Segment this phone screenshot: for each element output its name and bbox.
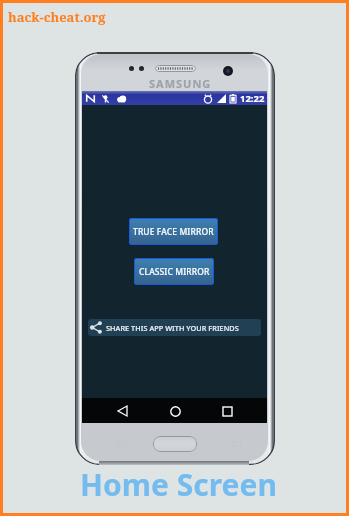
button[interactable]: TRUE FACE MIRROR: [129, 218, 218, 245]
staticText: SHARE THIS APP WITH YOUR FRIENDS: [106, 323, 239, 333]
button[interactable]: SHARE THIS APP WITH YOUR FRIENDS: [88, 319, 261, 336]
button[interactable]: Back: [110, 399, 134, 423]
button[interactable]: CLASSIC MIRROR: [134, 258, 214, 285]
staticText: CLASSIC MIRROR: [139, 266, 210, 278]
button[interactable]: Recent apps: [215, 399, 239, 423]
staticText: hack-cheat.org: [8, 8, 106, 26]
staticText: TRUE FACE MIRROR: [133, 226, 214, 238]
staticText: SAMSUNG: [149, 76, 212, 91]
staticText: Home Screen: [80, 464, 277, 505]
staticText: 12:22: [240, 92, 265, 105]
button[interactable]: Home: [163, 399, 187, 423]
